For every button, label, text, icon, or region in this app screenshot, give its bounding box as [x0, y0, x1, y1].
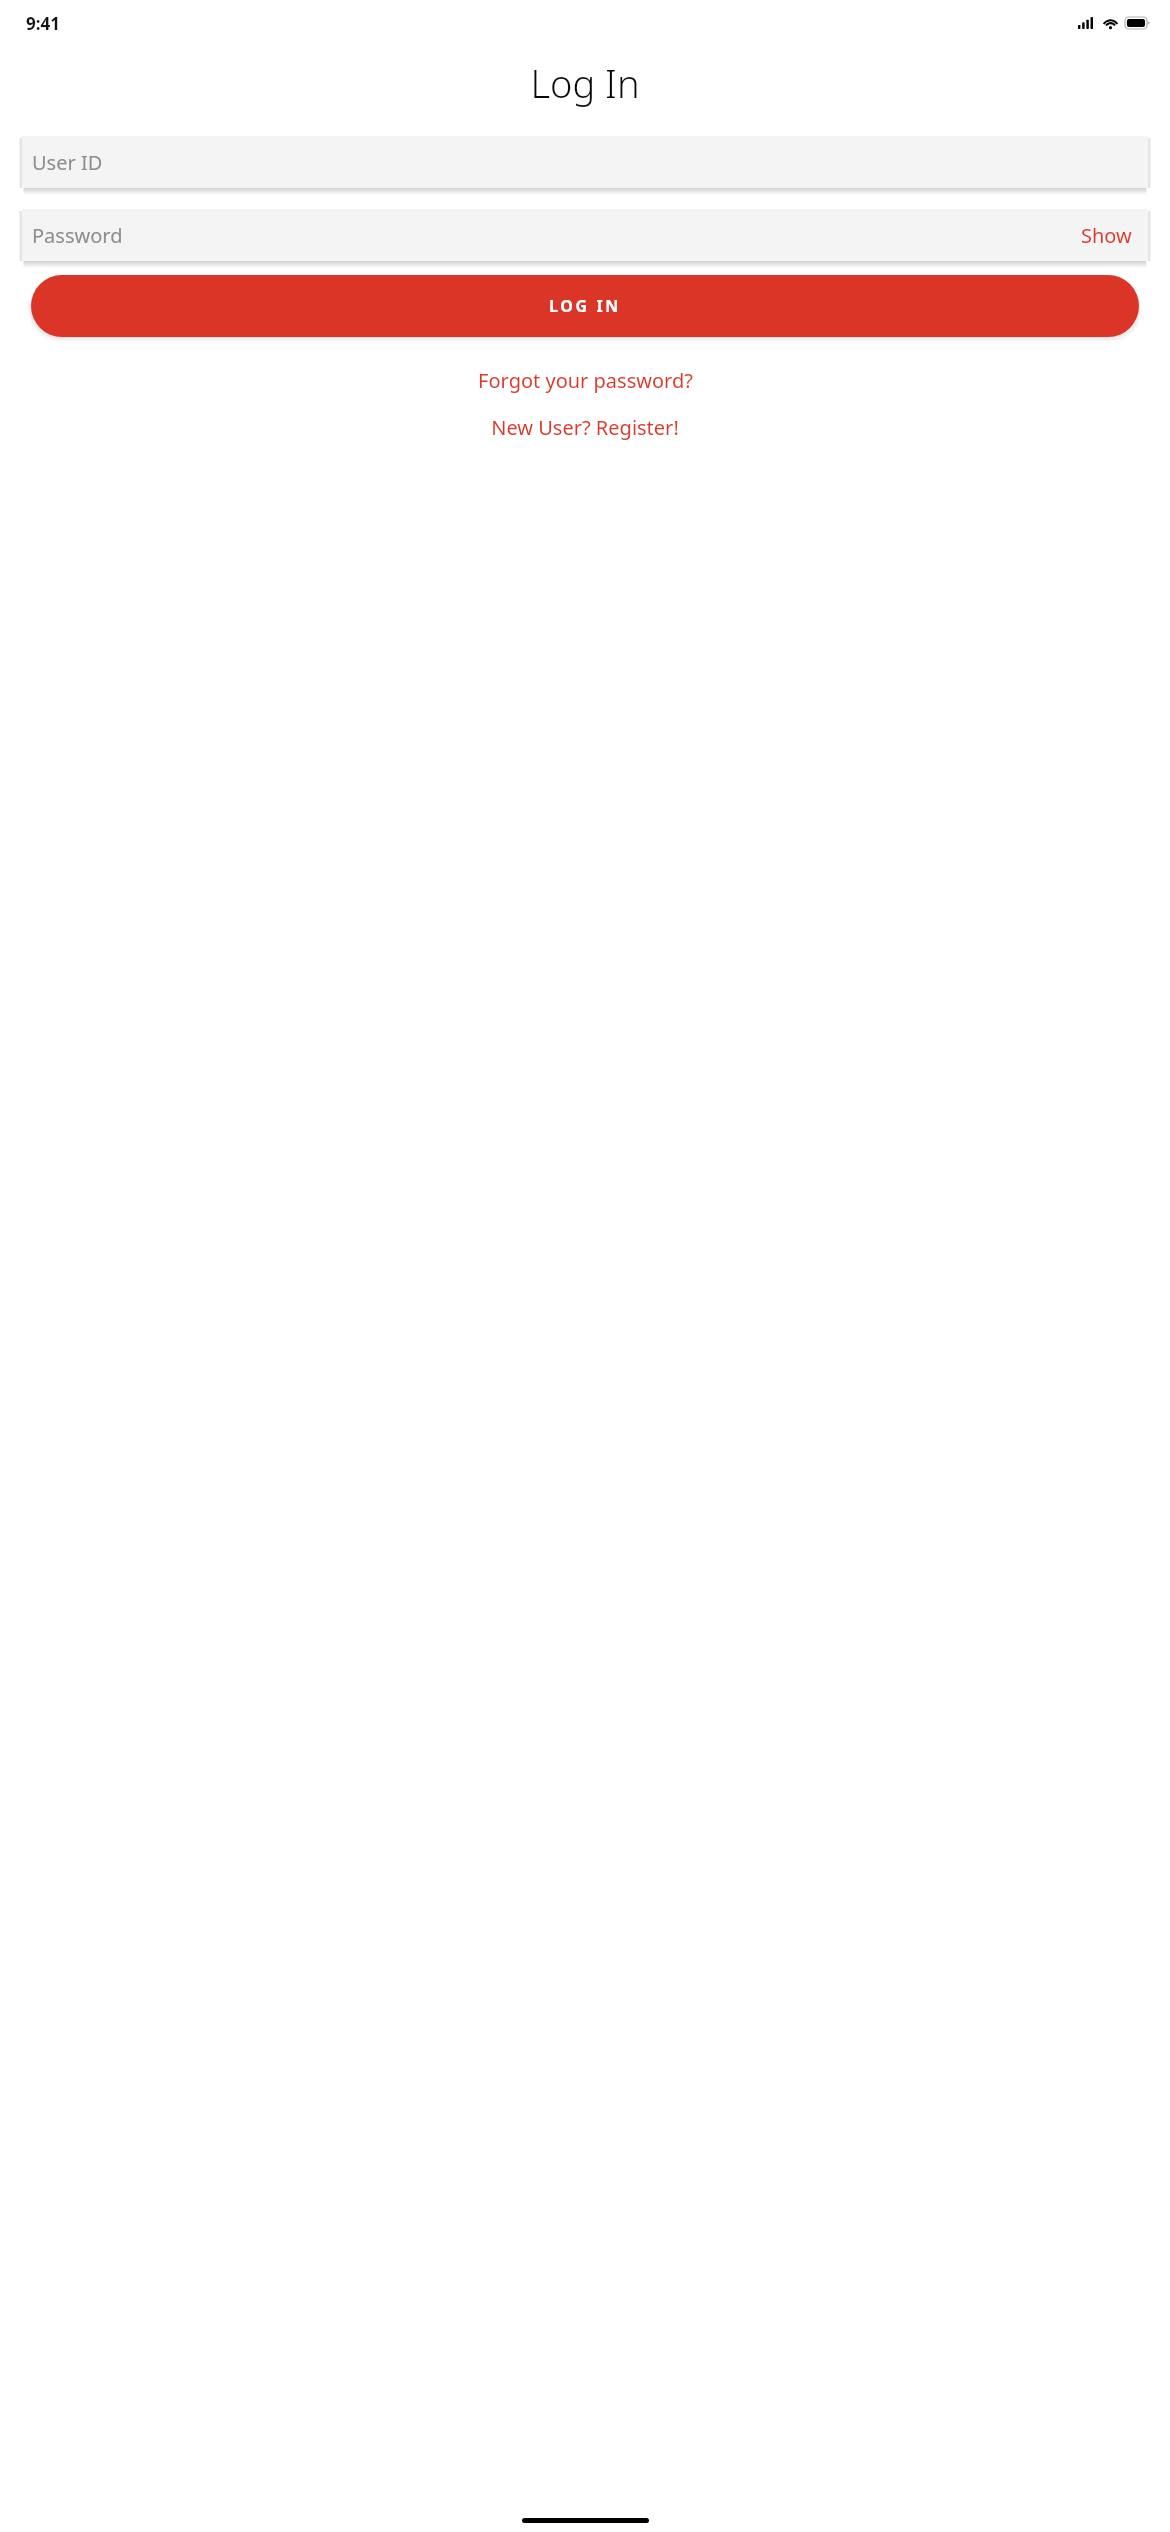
- button[interactable]: New User? Register!: [0, 408, 1170, 447]
- button[interactable]: LOG IN: [31, 275, 1139, 337]
- staticText: User ID: [32, 149, 1138, 176]
- staticText: Password: [32, 222, 1075, 249]
- staticText: Log In: [530, 57, 640, 109]
- staticText: New User? Register!: [491, 414, 679, 441]
- button[interactable]: Password input field: [22, 209, 1148, 261]
- staticText: LOG IN: [549, 295, 621, 317]
- button[interactable]: Forgot your password?: [0, 361, 1170, 400]
- button[interactable]: User ID input field: [22, 136, 1148, 188]
- staticText: 9:41: [26, 12, 60, 35]
- staticText: Show: [1081, 222, 1132, 249]
- button[interactable]: Show: [1075, 218, 1138, 253]
- staticText: Forgot your password?: [478, 367, 693, 394]
